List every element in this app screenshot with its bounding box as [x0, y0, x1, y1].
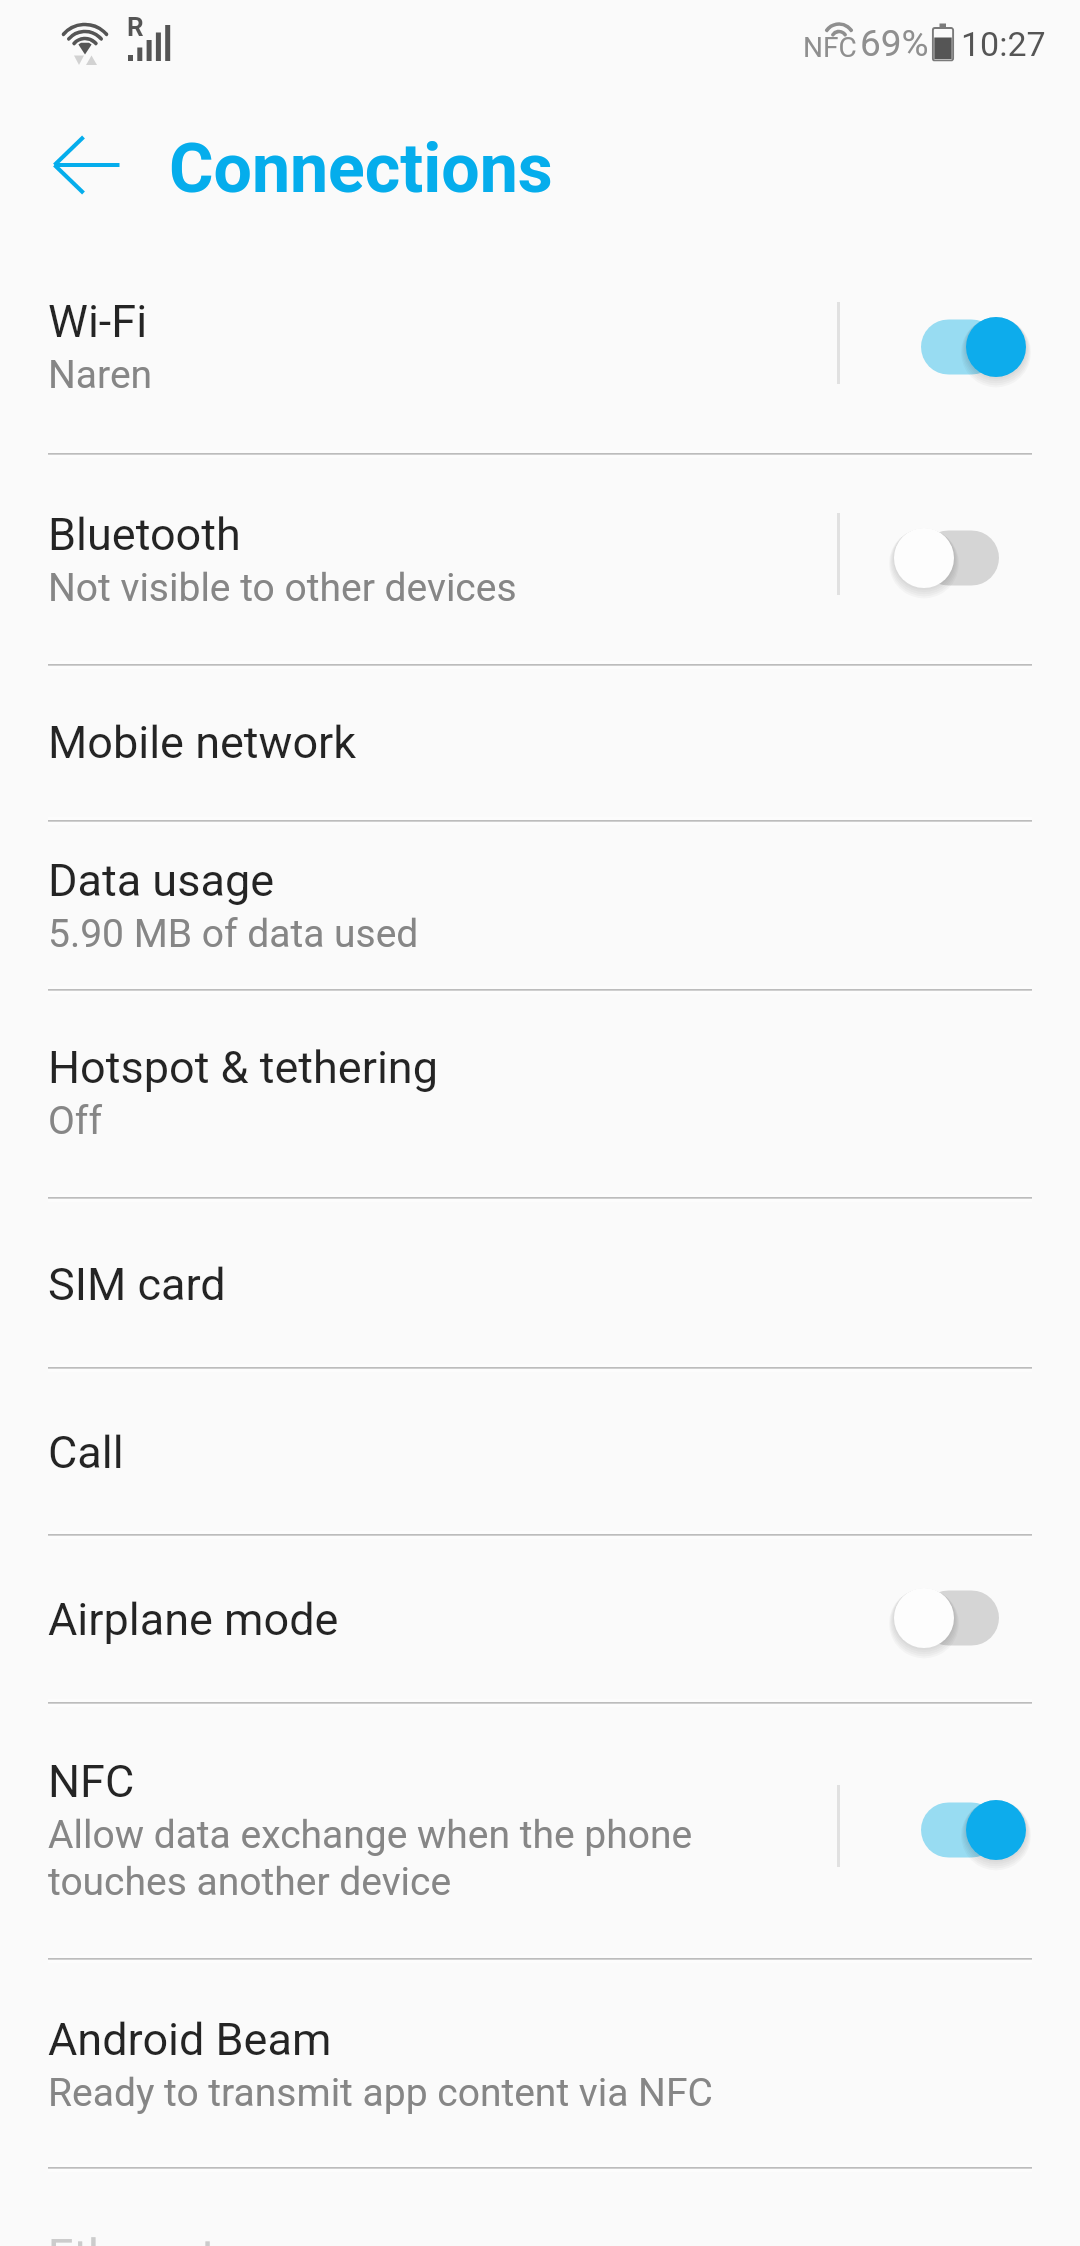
staticText: Call	[48, 1426, 124, 1479]
button[interactable]: Data usage	[0, 821, 1080, 988]
staticText: NFC	[803, 31, 857, 64]
button[interactable]: Bluetooth	[0, 454, 1080, 663]
staticText: Connections	[169, 129, 553, 209]
button[interactable]: Mobile network	[0, 665, 1080, 819]
staticText: Naren	[48, 352, 153, 398]
button[interactable]: Wi-Fi switch	[884, 302, 1032, 392]
button[interactable]: Hotspot & tethering	[0, 990, 1080, 1196]
staticText: SIM card	[48, 1258, 226, 1311]
staticText: Wi-Fi	[48, 295, 148, 348]
button[interactable]: Call	[0, 1368, 1080, 1533]
button[interactable]: Ethernet	[0, 2168, 1080, 2246]
staticText: Airplane mode	[48, 1593, 339, 1646]
staticText: Ready to transmit app content via NFC	[48, 2070, 713, 2116]
staticText: NFC	[48, 1755, 135, 1808]
button[interactable]: SIM card	[0, 1198, 1080, 1366]
button[interactable]: Android Beam	[0, 1959, 1080, 2166]
staticText: 5.90 MB of data used	[48, 911, 419, 957]
staticText: Not visible to other devices	[48, 565, 517, 611]
button[interactable]: Back	[27, 118, 147, 212]
button[interactable]: NFC switch	[884, 1785, 1032, 1875]
staticText: R	[127, 12, 144, 42]
staticText: Allow data exchange when the phone touch…	[48, 1812, 693, 1905]
button[interactable]: Bluetooth switch	[884, 513, 1032, 603]
staticText: 69%	[860, 22, 929, 65]
staticText: Data usage	[48, 854, 275, 907]
staticText: Hotspot & tethering	[48, 1041, 438, 1094]
staticText: Mobile network	[48, 716, 357, 769]
button[interactable]: Airplane mode	[0, 1535, 1080, 1701]
staticText: 10:27	[961, 24, 1046, 64]
button[interactable]: Airplane mode switch	[884, 1573, 1032, 1663]
staticText: Off	[48, 1098, 102, 1144]
button[interactable]: Wi-Fi	[0, 243, 1080, 452]
staticText: Ethernet	[48, 2229, 216, 2246]
staticText: Bluetooth	[48, 508, 241, 561]
button[interactable]: NFC	[0, 1703, 1080, 1957]
staticText: Android Beam	[48, 2013, 332, 2066]
